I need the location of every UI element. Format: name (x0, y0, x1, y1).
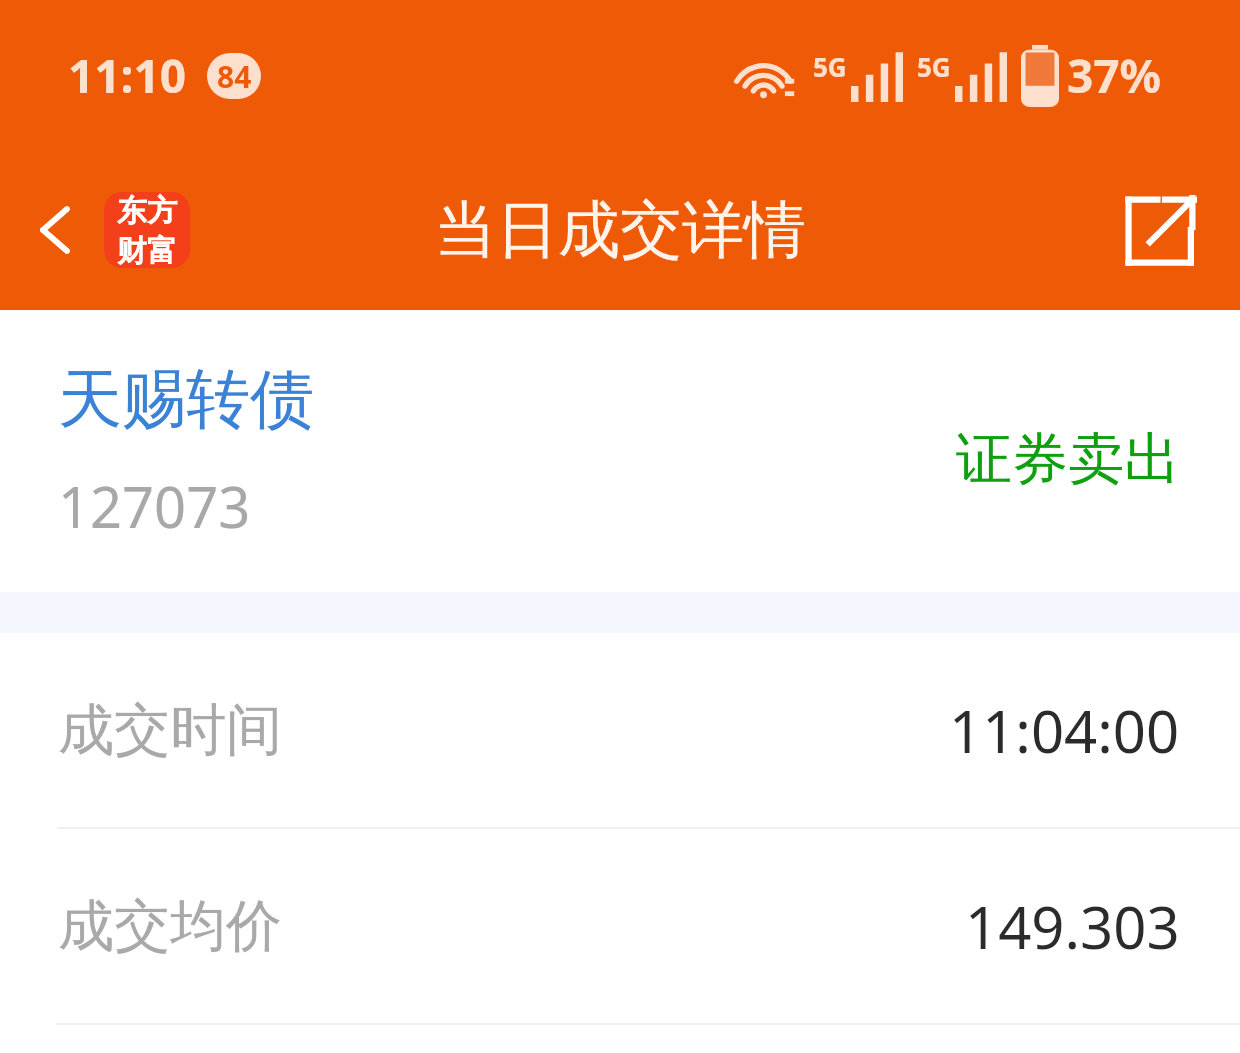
button[interactable]: 成交时间 (0, 633, 1240, 829)
button[interactable]: Share (1114, 182, 1210, 278)
staticText: 11:04:00 (949, 691, 1180, 770)
staticText: 127073 (58, 468, 251, 544)
staticText: 东方 (117, 192, 177, 230)
staticText: 成交时间 (58, 695, 282, 766)
button[interactable]: East Money logo (104, 192, 190, 268)
staticText: 成交均价 (58, 891, 282, 962)
staticText: 11:10 (68, 44, 187, 107)
button[interactable]: 成交均价 (0, 829, 1240, 1025)
button[interactable]: Back (14, 188, 98, 272)
staticText: 149.303 (965, 887, 1180, 966)
staticText: 财富 (117, 232, 177, 268)
staticText: 当日成交详情 (0, 191, 1240, 269)
button[interactable]: 天赐转债 (0, 310, 1240, 592)
staticText: 5G (813, 49, 847, 84)
staticText: 37% (1067, 44, 1162, 107)
staticText: 84 (217, 56, 252, 97)
staticText: 天赐转债 (58, 359, 314, 440)
staticText: 证券卖出 (956, 424, 1180, 495)
staticText: 5G (917, 49, 951, 84)
